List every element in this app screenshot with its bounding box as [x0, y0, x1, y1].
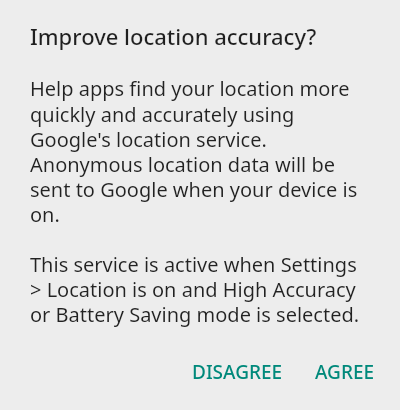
button[interactable]: DISAGREE: [184, 349, 291, 395]
staticText: Help apps find your location more quickl…: [30, 75, 360, 327]
staticText: AGREE: [315, 359, 375, 385]
button[interactable]: AGREE: [307, 349, 383, 395]
staticText: DISAGREE: [192, 359, 283, 385]
staticText: Improve location accuracy?: [30, 21, 317, 51]
